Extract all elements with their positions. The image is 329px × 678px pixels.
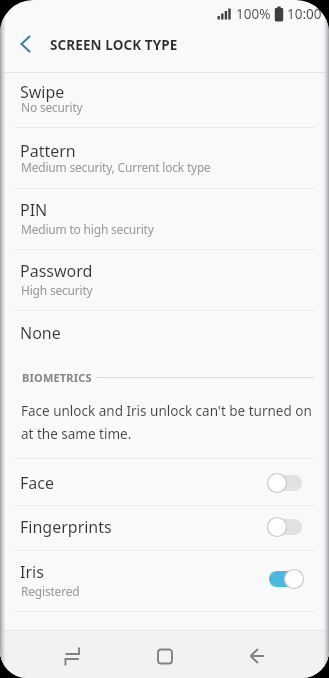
- staticText: at the same time.: [21, 425, 132, 443]
- staticText: SCREEN LOCK TYPE: [50, 36, 178, 54]
- staticText: Registered: [21, 583, 80, 599]
- staticText: Medium security, Current lock type: [21, 159, 211, 175]
- staticText: Swipe: [20, 81, 65, 103]
- staticText: Medium to high security: [21, 221, 154, 237]
- staticText: 100%: [236, 5, 271, 23]
- staticText: High security: [21, 282, 93, 298]
- staticText: BIOMETRICS: [22, 370, 92, 385]
- staticText: Iris: [20, 561, 44, 583]
- staticText: No security: [21, 99, 83, 115]
- staticText: Fingerprints: [20, 516, 112, 538]
- staticText: 10:00: [287, 5, 322, 23]
- staticText: PIN: [20, 199, 48, 221]
- staticText: Password: [20, 260, 93, 282]
- staticText: Face: [20, 472, 54, 494]
- staticText: Pattern: [20, 140, 76, 162]
- staticText: None: [20, 322, 61, 344]
- staticText: Face unlock and Iris unlock can't be tur…: [21, 402, 312, 420]
